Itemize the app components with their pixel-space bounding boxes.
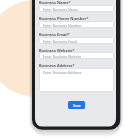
button[interactable]: Enter Business Website [39, 52, 114, 59]
staticText: Enter Business Website [43, 54, 82, 59]
staticText: Enter Business Email [43, 39, 78, 44]
staticText: Business Email* [39, 32, 70, 37]
staticText: Business Website* [39, 48, 75, 53]
button[interactable]: Save [68, 101, 85, 109]
button[interactable]: Enter Business Address [39, 68, 114, 92]
staticText: Save [73, 103, 81, 108]
button[interactable]: Enter Business Email [39, 37, 114, 44]
button[interactable]: Enter Business Name [39, 5, 114, 12]
staticText: Business Phone Number* [39, 16, 89, 21]
staticText: Enter Business Address [43, 70, 82, 75]
staticText: Enter Business Number [43, 23, 82, 28]
staticText: Business Address* [39, 63, 75, 68]
staticText: Business Name* [39, 0, 71, 5]
staticText: Enter Business Name [43, 7, 78, 12]
button[interactable]: Enter Business Number [39, 21, 114, 28]
